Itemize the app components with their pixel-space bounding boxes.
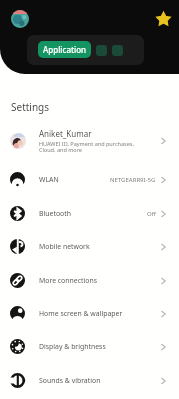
button[interactable]: More connections: [0, 264, 179, 297]
button[interactable]: Profile: [11, 10, 29, 28]
staticText: Display & brightness: [39, 342, 106, 351]
staticText: HUAWEI ID, Payment and purchases, Cloud,…: [39, 140, 134, 154]
button[interactable]: Mobile network: [0, 230, 179, 263]
button[interactable]: Favorite: [156, 11, 171, 26]
button[interactable]: Bluetooth: [0, 197, 179, 230]
staticText: Home screen & wallpaper: [39, 309, 123, 318]
button[interactable]: Home screen & wallpaper: [0, 297, 179, 330]
button[interactable]: Display & brightness: [0, 330, 179, 363]
staticText: Aniket_Kumar: [39, 128, 92, 139]
staticText: Sounds & vibration: [39, 376, 101, 385]
staticText: Settings: [11, 100, 50, 114]
staticText: NETGEARR9I-5G: [110, 176, 156, 184]
button[interactable]: Application: [38, 41, 91, 58]
staticText: WLAN: [39, 175, 59, 184]
staticText: More connections: [39, 276, 97, 285]
button[interactable]: WLAN: [0, 163, 179, 196]
staticText: Application: [43, 44, 87, 55]
staticText: Off: [147, 210, 156, 218]
staticText: Mobile network: [39, 242, 90, 251]
button[interactable]: Aniket_Kumar: [0, 124, 179, 158]
button[interactable]: Sounds & vibration: [0, 364, 179, 397]
staticText: Bluetooth: [39, 209, 71, 218]
